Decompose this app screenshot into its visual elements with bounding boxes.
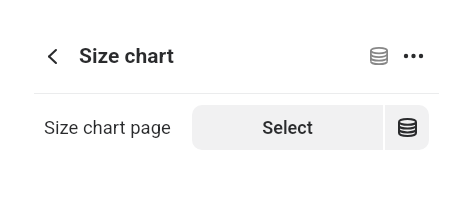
staticText: Select [262, 117, 313, 138]
button[interactable]: Select [192, 105, 383, 150]
button[interactable]: Back [36, 40, 68, 72]
staticText: Size chart page [44, 117, 171, 139]
button[interactable]: Size chart database [363, 40, 395, 72]
staticText: Size chart [79, 44, 174, 69]
button[interactable]: Browse size charts [385, 105, 429, 150]
button[interactable]: More options [397, 40, 429, 72]
